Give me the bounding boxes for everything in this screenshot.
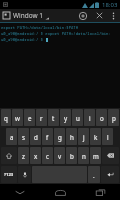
staticText: u0_a98@android:/ $: [1, 37, 46, 42]
staticText: u: [76, 114, 80, 122]
staticText: z: [22, 152, 25, 160]
staticText: c: [46, 152, 49, 160]
staticText: m: [93, 152, 99, 160]
staticText: f: [46, 133, 49, 141]
staticText: a: [10, 133, 14, 141]
staticText: x: [34, 152, 38, 160]
button[interactable]: k: [90, 128, 101, 145]
button[interactable]: h: [66, 128, 77, 145]
staticText: d: [34, 133, 38, 141]
button[interactable]: New window: [74, 9, 91, 22]
button[interactable]: b: [66, 147, 77, 164]
button[interactable]: x: [30, 147, 41, 164]
button[interactable]: q: [1, 109, 11, 126]
button[interactable]: v: [54, 147, 65, 164]
staticText: g: [58, 133, 62, 141]
button[interactable]: t: [48, 109, 59, 126]
staticText: l: [107, 133, 109, 141]
button[interactable]: l: [102, 128, 113, 145]
button[interactable]: Hide keyboard: [0, 184, 40, 200]
staticText: v: [58, 152, 62, 160]
button[interactable]: .: [88, 166, 100, 183]
button[interactable]: More options: [107, 9, 120, 22]
button[interactable]: z: [18, 147, 29, 164]
staticText: h: [70, 133, 74, 141]
button[interactable]: c: [42, 147, 53, 164]
button[interactable]: Voice input: [18, 166, 31, 183]
button[interactable]: w: [12, 109, 23, 126]
staticText: u0_a98@android:/ $ export PATH=/data/loc…: [1, 31, 120, 36]
staticText: export PATH=/data/local/bin:$PATH: [1, 25, 79, 30]
button[interactable]: y: [60, 109, 71, 126]
button[interactable]: d: [30, 128, 41, 145]
button[interactable]: n: [78, 147, 89, 164]
staticText: p: [112, 114, 116, 122]
button[interactable]: a: [6, 128, 17, 145]
button[interactable]: f: [42, 128, 53, 145]
button[interactable]: Home: [40, 184, 80, 200]
button[interactable]: Close window: [91, 9, 107, 22]
button[interactable]: s: [18, 128, 29, 145]
button[interactable]: e: [24, 109, 35, 126]
button[interactable]: r: [36, 109, 47, 126]
staticText: s: [22, 133, 25, 141]
staticText: w: [15, 114, 20, 122]
staticText: e: [28, 114, 32, 122]
staticText: ?123: [4, 172, 14, 178]
button[interactable]: u: [72, 109, 83, 126]
staticText: 18:03: [102, 1, 118, 9]
button[interactable]: p: [108, 109, 119, 126]
button[interactable]: Window 1: [0, 9, 74, 22]
button[interactable]: o: [96, 109, 107, 126]
staticText: i: [89, 114, 91, 122]
button[interactable]: Recent apps: [80, 184, 120, 200]
button[interactable]: m: [90, 147, 101, 164]
staticText: j: [83, 133, 85, 141]
button[interactable]: i: [84, 109, 95, 126]
staticText: y: [64, 114, 68, 122]
button[interactable]: Symbols: [1, 166, 17, 183]
staticText: Window 1: [13, 11, 44, 20]
staticText: k: [94, 133, 98, 141]
staticText: r: [40, 114, 43, 122]
button[interactable]: Shift: [1, 147, 17, 164]
staticText: b: [70, 152, 74, 160]
button[interactable]: g: [54, 128, 65, 145]
staticText: t: [52, 114, 55, 122]
staticText: .: [93, 171, 95, 179]
button[interactable]: Enter: [101, 166, 119, 183]
staticText: q: [4, 114, 8, 122]
button[interactable]: Delete: [102, 147, 119, 164]
staticText: o: [100, 114, 104, 122]
button[interactable]: j: [78, 128, 89, 145]
staticText: n: [82, 152, 86, 160]
